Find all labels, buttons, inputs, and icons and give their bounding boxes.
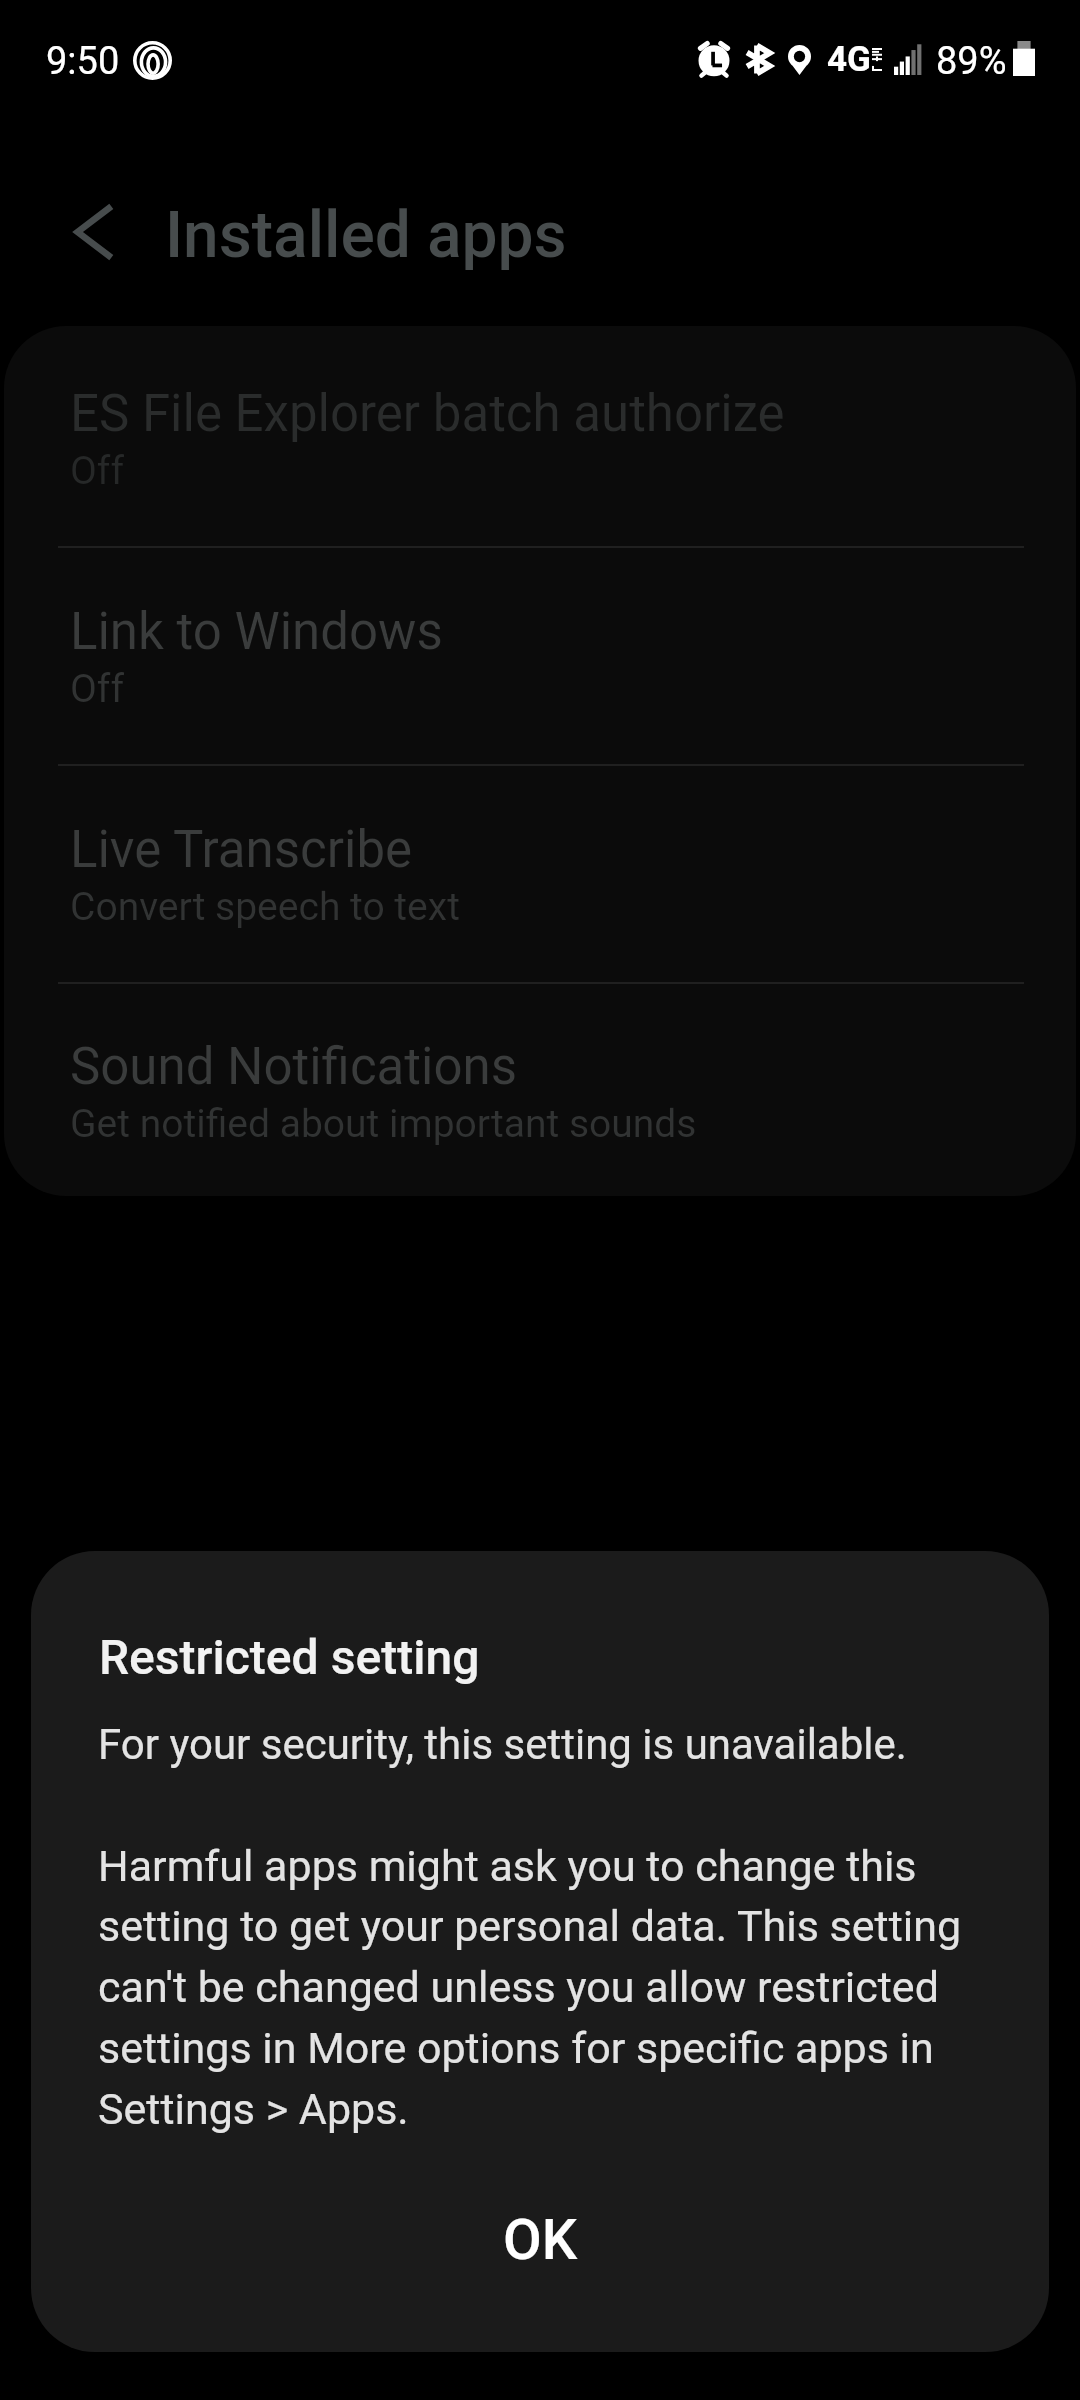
staticText: Installed apps xyxy=(165,198,567,273)
staticText: OK xyxy=(503,2207,577,2273)
staticText: 9:50 xyxy=(46,39,120,84)
button[interactable]: Sound Notifications xyxy=(4,980,1076,1196)
staticText: 4G xyxy=(827,39,871,80)
staticText: Convert speech to text xyxy=(70,884,460,930)
staticText: Get notified about important sounds xyxy=(70,1101,697,1147)
staticText: Sound Notifications xyxy=(70,1037,517,1097)
staticText: Off xyxy=(70,666,124,712)
staticText: Restricted setting xyxy=(99,1629,480,1685)
staticText: For your security, this setting is unava… xyxy=(98,1720,998,1769)
button[interactable]: ES File Explorer batch authorize xyxy=(4,326,1076,544)
staticText: Harmful apps might ask you to change thi… xyxy=(98,1841,988,2134)
button[interactable]: Live Transcribe xyxy=(4,762,1076,980)
staticText: Link to Windows xyxy=(70,602,443,662)
staticText: ES File Explorer batch authorize xyxy=(70,384,785,444)
staticText: 89% xyxy=(936,39,1007,84)
button[interactable]: Navigate up xyxy=(50,180,136,284)
button[interactable]: Installed apps xyxy=(165,191,567,279)
button[interactable]: OK xyxy=(31,2180,1049,2300)
button[interactable]: Link to Windows xyxy=(4,544,1076,762)
staticText: Off xyxy=(70,448,124,494)
staticText: Live Transcribe xyxy=(70,820,413,880)
